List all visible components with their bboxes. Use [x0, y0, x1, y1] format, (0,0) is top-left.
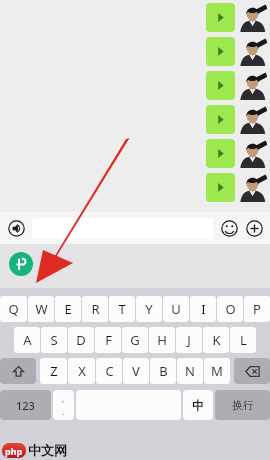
- button[interactable]: Sticker pack: [9, 252, 33, 276]
- staticText: php: [5, 445, 23, 457]
- staticText: 换行: [232, 398, 254, 412]
- button[interactable]: Voice input: [5, 217, 27, 239]
- staticText: U: [171, 300, 181, 318]
- staticText: ,: [62, 393, 65, 404]
- staticText: B: [159, 362, 168, 380]
- staticText: I: [201, 300, 206, 318]
- staticText: Q: [8, 300, 19, 318]
- staticText: 中: [192, 398, 204, 413]
- button[interactable]: 123: [0, 390, 51, 420]
- button[interactable]: T: [109, 296, 135, 322]
- staticText: J: [187, 331, 191, 349]
- staticText: O: [225, 300, 236, 318]
- button[interactable]: Y: [136, 296, 162, 322]
- button[interactable]: X: [68, 358, 95, 384]
- button[interactable]: Contact avatar: [238, 139, 267, 168]
- staticText: L: [240, 331, 247, 349]
- button[interactable]: A: [14, 327, 40, 353]
- button[interactable]: I: [190, 296, 216, 322]
- button[interactable]: O: [217, 296, 243, 322]
- button[interactable]: Shift: [0, 358, 36, 384]
- staticText: Z: [50, 362, 58, 380]
- button[interactable]: Contact avatar: [238, 173, 267, 202]
- button[interactable]: G: [122, 327, 148, 353]
- staticText: M: [211, 362, 223, 380]
- staticText: 中文网: [28, 442, 67, 458]
- button[interactable]: [206, 105, 235, 134]
- staticText: S: [50, 331, 58, 349]
- button[interactable]: N: [177, 358, 203, 384]
- button[interactable]: R: [82, 296, 108, 322]
- staticText: T: [118, 300, 126, 318]
- button[interactable]: Contact avatar: [238, 37, 267, 66]
- button[interactable]: More: [243, 217, 265, 239]
- button[interactable]: Contact avatar: [238, 105, 267, 134]
- staticText: K: [212, 331, 221, 349]
- button[interactable]: [206, 3, 235, 32]
- button[interactable]: 换行: [215, 390, 270, 420]
- button[interactable]: [206, 139, 235, 168]
- staticText: X: [78, 362, 86, 380]
- button[interactable]: K: [203, 327, 229, 353]
- button[interactable]: U: [163, 296, 189, 322]
- staticText: Y: [145, 300, 153, 318]
- button[interactable]: Contact avatar: [238, 3, 267, 32]
- staticText: A: [23, 331, 32, 349]
- staticText: P: [253, 300, 261, 318]
- staticText: H: [157, 331, 167, 349]
- button[interactable]: D: [68, 327, 94, 353]
- button[interactable]: S: [41, 327, 67, 353]
- button[interactable]: ,: [53, 390, 74, 420]
- button[interactable]: J: [176, 327, 202, 353]
- button[interactable]: Contact avatar: [238, 71, 267, 100]
- button[interactable]: H: [149, 327, 175, 353]
- button[interactable]: W: [28, 296, 54, 322]
- button[interactable]: E: [55, 296, 81, 322]
- button[interactable]: Backspace: [234, 358, 270, 384]
- staticText: E: [64, 300, 72, 318]
- button[interactable]: [32, 218, 213, 239]
- staticText: N: [185, 362, 195, 380]
- button[interactable]: L: [230, 327, 256, 353]
- staticText: R: [91, 300, 100, 318]
- staticText: C: [105, 362, 114, 380]
- button[interactable]: 中: [183, 390, 213, 420]
- button[interactable]: Q: [0, 296, 27, 322]
- button[interactable]: V: [123, 358, 149, 384]
- staticText: F: [105, 331, 112, 349]
- button[interactable]: [206, 71, 235, 100]
- staticText: 123: [16, 398, 35, 413]
- button[interactable]: C: [96, 358, 122, 384]
- button[interactable]: B: [150, 358, 176, 384]
- button[interactable]: M: [204, 358, 230, 384]
- staticText: .: [62, 406, 65, 417]
- button[interactable]: Z: [40, 358, 67, 384]
- staticText: G: [130, 331, 140, 349]
- button[interactable]: [206, 37, 235, 66]
- button[interactable]: [206, 173, 235, 202]
- staticText: V: [132, 362, 140, 380]
- button[interactable]: F: [95, 327, 121, 353]
- staticText: W: [35, 300, 48, 318]
- button[interactable]: Emoji: [218, 217, 240, 239]
- button[interactable]: P: [244, 296, 270, 322]
- staticText: D: [76, 331, 86, 349]
